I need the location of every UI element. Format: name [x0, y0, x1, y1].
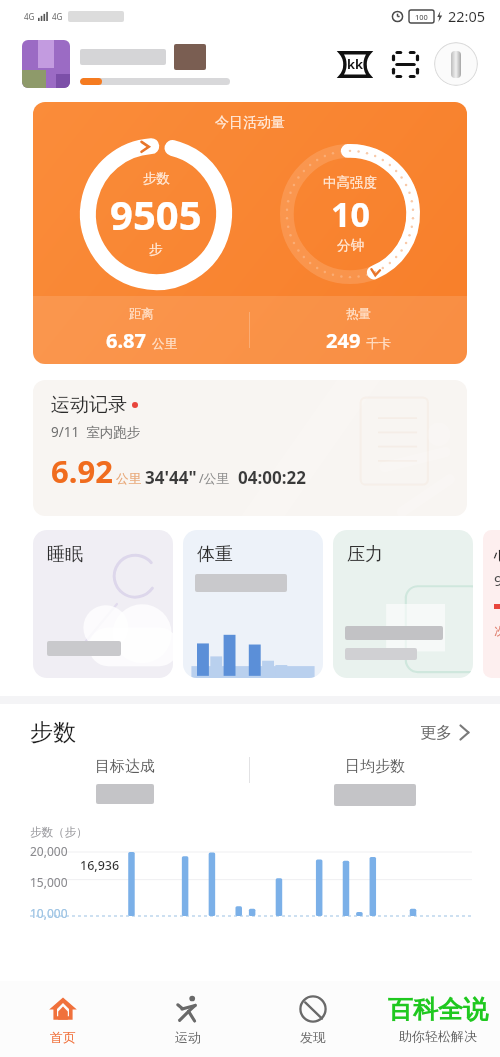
staticText: 热量 — [346, 306, 371, 322]
button[interactable]: 步数 — [30, 718, 470, 747]
button[interactable]: 运动 — [125, 981, 250, 1057]
staticText: 10 — [331, 191, 370, 237]
staticText: 日均步数 — [345, 757, 405, 776]
staticText: 步数 — [30, 718, 76, 747]
staticText: 助你轻松解决 — [399, 1028, 477, 1044]
staticText: 34'44" — [145, 466, 197, 489]
staticText: 步 — [149, 241, 163, 258]
staticText: 249 — [326, 327, 366, 354]
staticText: 运动记录 — [51, 393, 127, 417]
staticText: 运动 — [175, 1029, 201, 1045]
staticText: 次 — [494, 623, 500, 638]
staticText: 体重 — [197, 543, 233, 566]
staticText: 公里 — [152, 336, 177, 352]
staticText: 今日活动量 — [33, 114, 467, 132]
staticText: 距离 — [129, 306, 154, 322]
button[interactable]: 发现 — [250, 981, 375, 1057]
staticText: 发现 — [300, 1029, 326, 1045]
button[interactable]: 首页 — [0, 981, 125, 1057]
staticText: 心 — [494, 544, 500, 565]
staticText: 睡眠 — [47, 543, 83, 566]
button[interactable]: Scan — [384, 43, 426, 85]
staticText: 9 — [494, 570, 500, 590]
staticText: 千卡 — [366, 336, 391, 352]
staticText: 6.87 — [106, 327, 152, 354]
staticText: 16,936 — [80, 857, 120, 874]
button[interactable]: 运动记录 — [33, 380, 467, 516]
staticText: 压力 — [347, 543, 383, 566]
staticText: 公里 — [116, 471, 141, 487]
button[interactable]: 今日活动量 — [33, 102, 467, 364]
staticText: 步数 — [143, 170, 170, 187]
staticText: 分钟 — [337, 237, 364, 254]
staticText: 中高强度 — [323, 174, 377, 191]
staticText: 更多 — [420, 723, 452, 743]
staticText: 15,000 — [30, 874, 68, 890]
button[interactable]: 睡眠 — [33, 530, 173, 678]
button[interactable]: KK — [334, 43, 376, 85]
staticText: 首页 — [50, 1029, 76, 1045]
button[interactable]: 心 — [483, 530, 500, 678]
button[interactable]: 体重 — [183, 530, 323, 678]
staticText: 9/11 室内跑步 — [51, 423, 141, 441]
staticText: 4G — [24, 11, 35, 22]
staticText: 步数（步） — [30, 825, 88, 839]
staticText: 百科全说 — [388, 994, 488, 1025]
staticText: 04:00:22 — [238, 466, 306, 489]
staticText: /公里 — [199, 470, 229, 487]
staticText: 9505 — [110, 187, 202, 241]
staticText: kk — [347, 55, 364, 73]
staticText: 6.92 — [51, 450, 113, 492]
button[interactable]: 压力 — [333, 530, 473, 678]
staticText: 20,000 — [30, 843, 68, 859]
staticText: 4G — [52, 11, 63, 22]
button[interactable]: Device — [434, 42, 478, 86]
button[interactable]: Profile — [22, 40, 70, 88]
staticText: 10,000 — [30, 905, 68, 921]
staticText: 100 — [415, 12, 428, 22]
staticText: 目标达成 — [95, 757, 155, 776]
staticText: 22:05 — [448, 6, 486, 26]
